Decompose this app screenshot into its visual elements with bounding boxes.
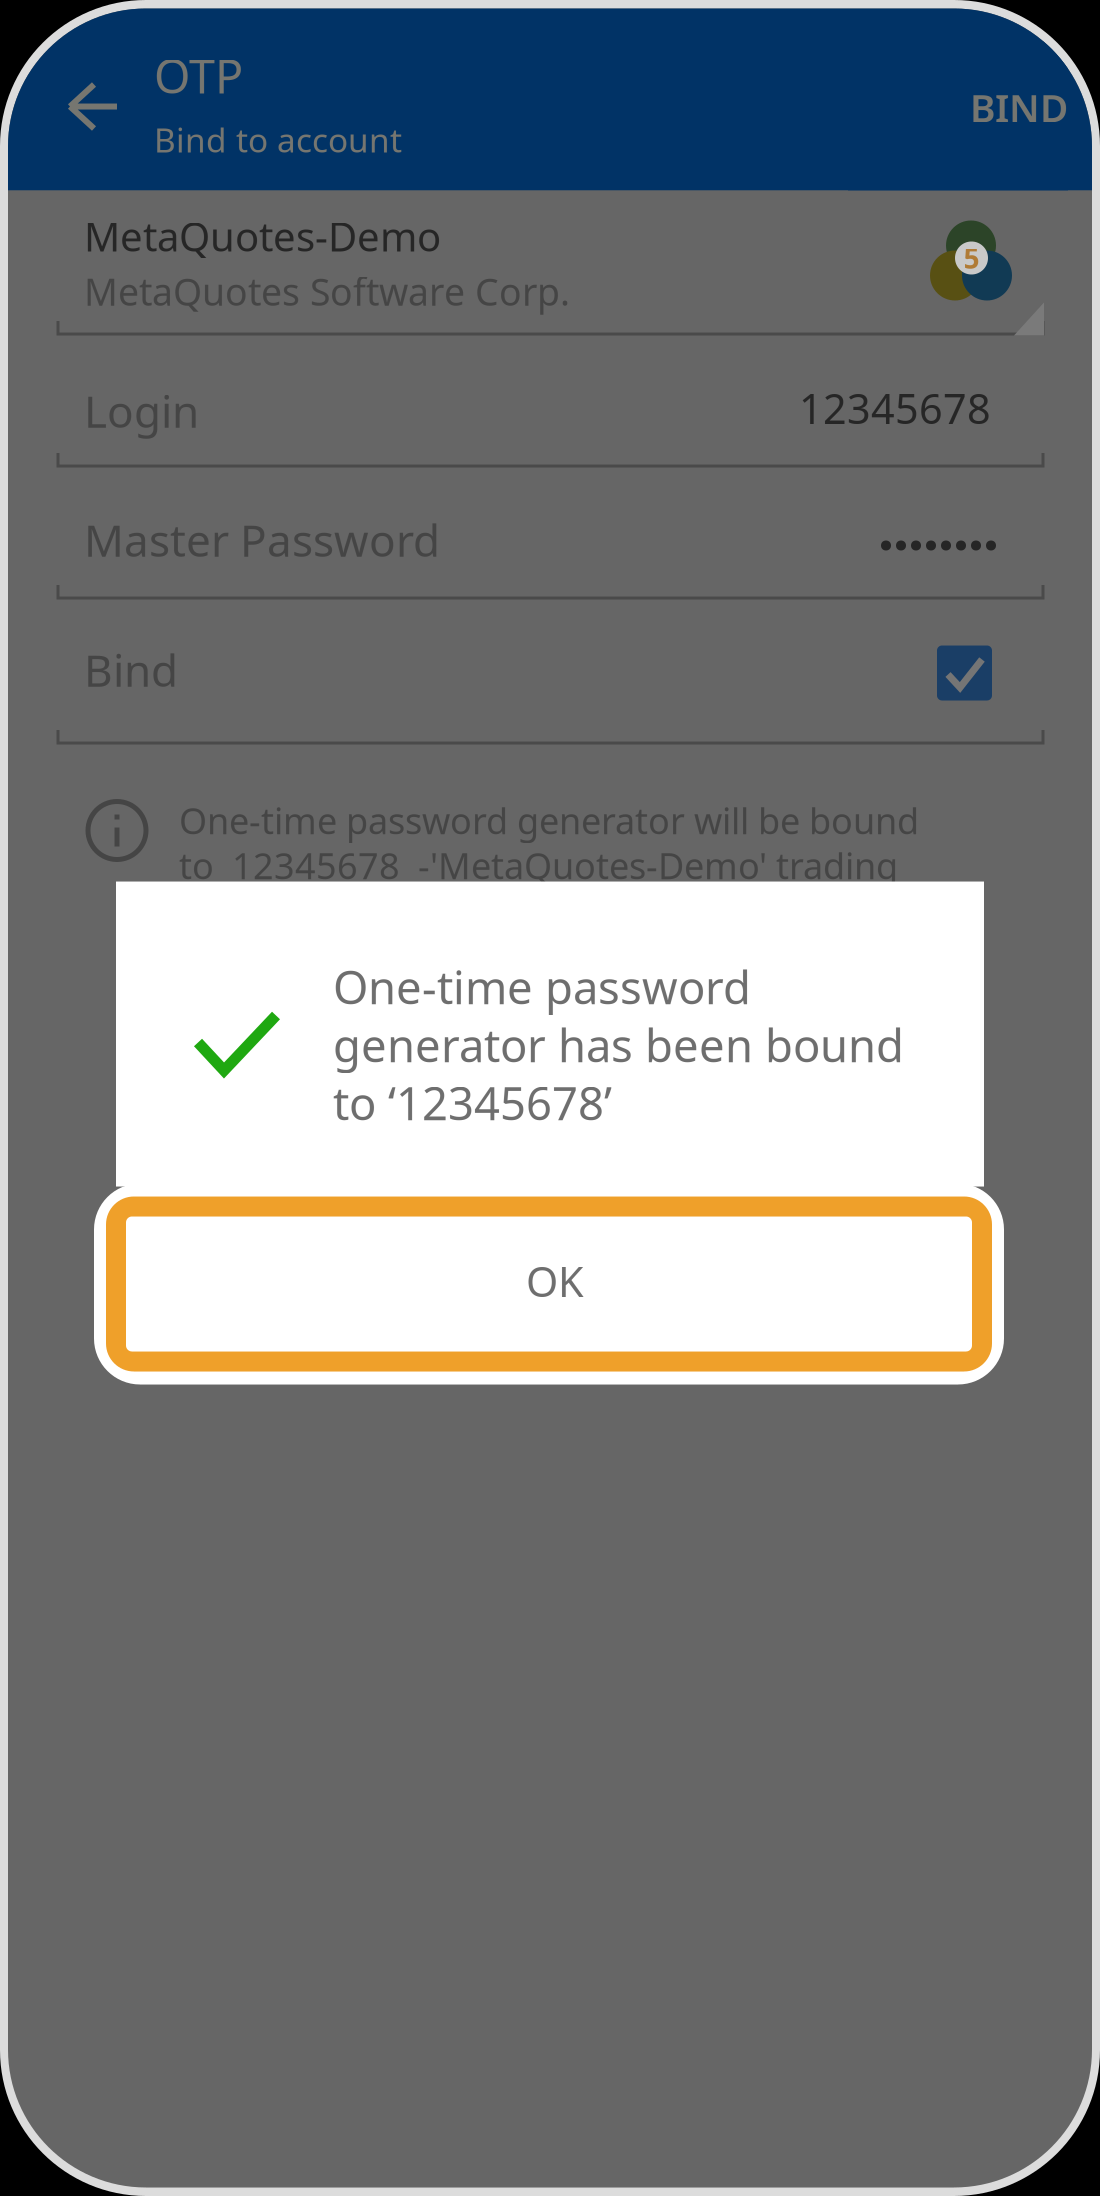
button[interactable]: Bind	[8, 598, 1092, 743]
staticText: OK	[526, 1253, 584, 1308]
button[interactable]: Login	[8, 333, 1092, 465]
button[interactable]: BIND	[848, 41, 1068, 191]
staticText: Bind	[84, 640, 178, 699]
staticText: Bind to account	[154, 117, 402, 162]
button[interactable]: OK	[94, 1183, 1004, 1384]
staticText: to 12345678 -'MetaQuotes-Demo' trading	[179, 841, 898, 889]
button[interactable]: Master Password	[8, 465, 1092, 598]
staticText: MetaQuotes-Demo	[84, 209, 441, 263]
staticText: One-time password	[333, 956, 751, 1017]
staticText: Login	[84, 381, 199, 440]
staticText: generator has been bound	[333, 1014, 904, 1075]
button[interactable]: MetaQuotes-Demo	[8, 190, 1092, 333]
staticText: OTP	[154, 44, 243, 106]
staticText: to ‘12345678’	[333, 1072, 612, 1133]
staticText: 5	[963, 239, 979, 277]
staticText: Master Password	[84, 510, 440, 569]
button[interactable]: Back	[18, 8, 138, 190]
staticText: MetaQuotes Software Corp.	[84, 266, 570, 316]
staticText: One-time password generator will be boun…	[179, 796, 919, 844]
staticText: 12345678	[799, 380, 991, 435]
staticText: BIND	[970, 81, 1068, 133]
